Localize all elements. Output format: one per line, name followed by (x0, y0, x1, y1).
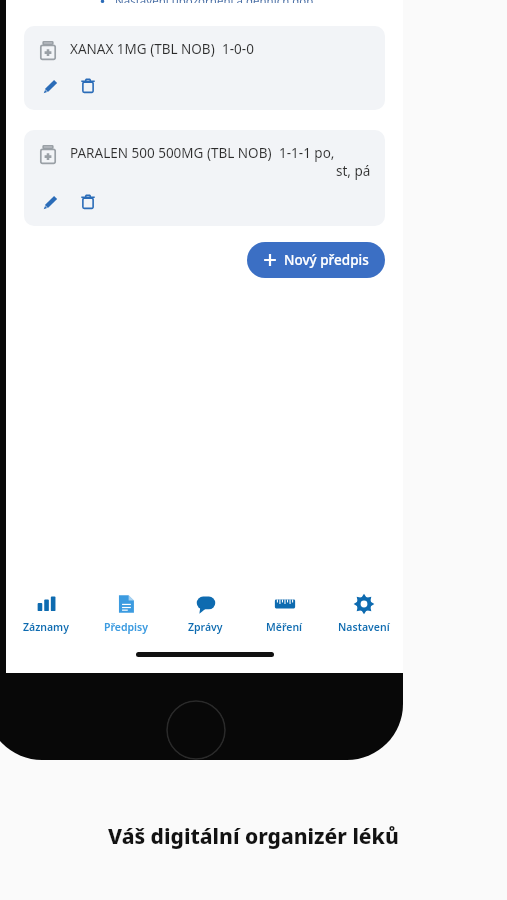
staticText: Předpisy (104, 620, 148, 634)
button[interactable]: Nastavení upozornění a denních dob (6, 0, 403, 10)
button[interactable]: Nastavení (324, 579, 403, 647)
staticText: 1-0-0 (222, 40, 254, 58)
staticText: Zprávy (188, 620, 223, 634)
button[interactable]: Zprávy (166, 579, 245, 647)
staticText: Nastavení (338, 620, 390, 634)
button[interactable]: Upravit (38, 190, 62, 214)
staticText: Nastavení upozornění a denních dob (115, 0, 314, 3)
staticText: 1-1-1 po, (279, 144, 335, 162)
staticText: XANAX 1MG (TBL NOB) (70, 40, 215, 58)
button[interactable]: Měření (245, 579, 324, 647)
staticText: Záznamy (23, 620, 69, 634)
button[interactable]: Smazat (76, 74, 100, 98)
staticText: st, pá (336, 162, 371, 180)
button[interactable]: Nový předpis (247, 242, 385, 278)
button[interactable]: XANAX 1MG (TBL NOB) (24, 26, 385, 110)
button[interactable]: Upravit (38, 74, 62, 98)
staticText: Měření (266, 620, 303, 634)
staticText: Nový předpis (284, 251, 369, 269)
button[interactable]: Smazat (76, 190, 100, 214)
button[interactable]: Záznamy (6, 579, 86, 647)
button[interactable]: Předpisy (86, 579, 166, 647)
staticText: PARALEN 500 500MG (TBL NOB) (70, 144, 272, 162)
staticText: Váš digitální organizér léků (108, 822, 399, 851)
button[interactable]: PARALEN 500 500MG (TBL NOB) (24, 130, 385, 226)
button[interactable]: Home (166, 700, 226, 760)
